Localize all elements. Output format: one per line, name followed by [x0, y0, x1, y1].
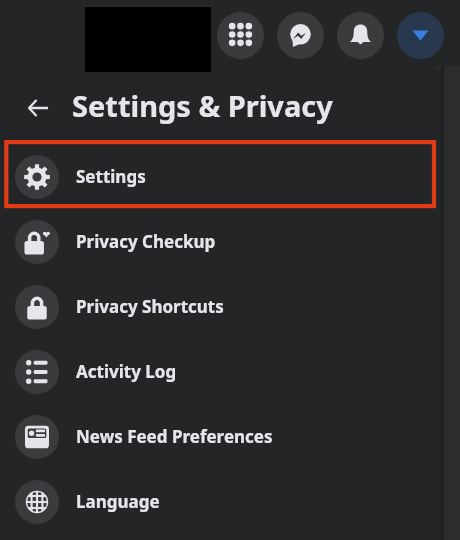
staticText: Settings — [76, 165, 146, 188]
staticText: Settings & Privacy — [72, 86, 333, 125]
staticText: Language — [76, 490, 160, 513]
button[interactable]: Language — [0, 469, 441, 534]
button[interactable]: Notifications — [337, 12, 384, 59]
button[interactable]: Back — [18, 88, 58, 128]
button[interactable]: News Feed Preferences — [0, 404, 441, 469]
button[interactable]: Privacy Checkup — [0, 209, 441, 274]
staticText: Privacy Checkup — [76, 230, 216, 253]
staticText: Privacy Shortcuts — [76, 295, 224, 318]
button[interactable]: Privacy Shortcuts — [0, 274, 441, 339]
button[interactable]: Menu — [217, 12, 264, 59]
staticText: Activity Log — [76, 360, 177, 383]
button[interactable]: Activity Log — [0, 339, 441, 404]
button[interactable]: Messenger — [277, 12, 324, 59]
staticText: News Feed Preferences — [76, 425, 273, 448]
button[interactable]: Account menu — [397, 12, 444, 59]
button[interactable]: Settings — [0, 144, 441, 209]
